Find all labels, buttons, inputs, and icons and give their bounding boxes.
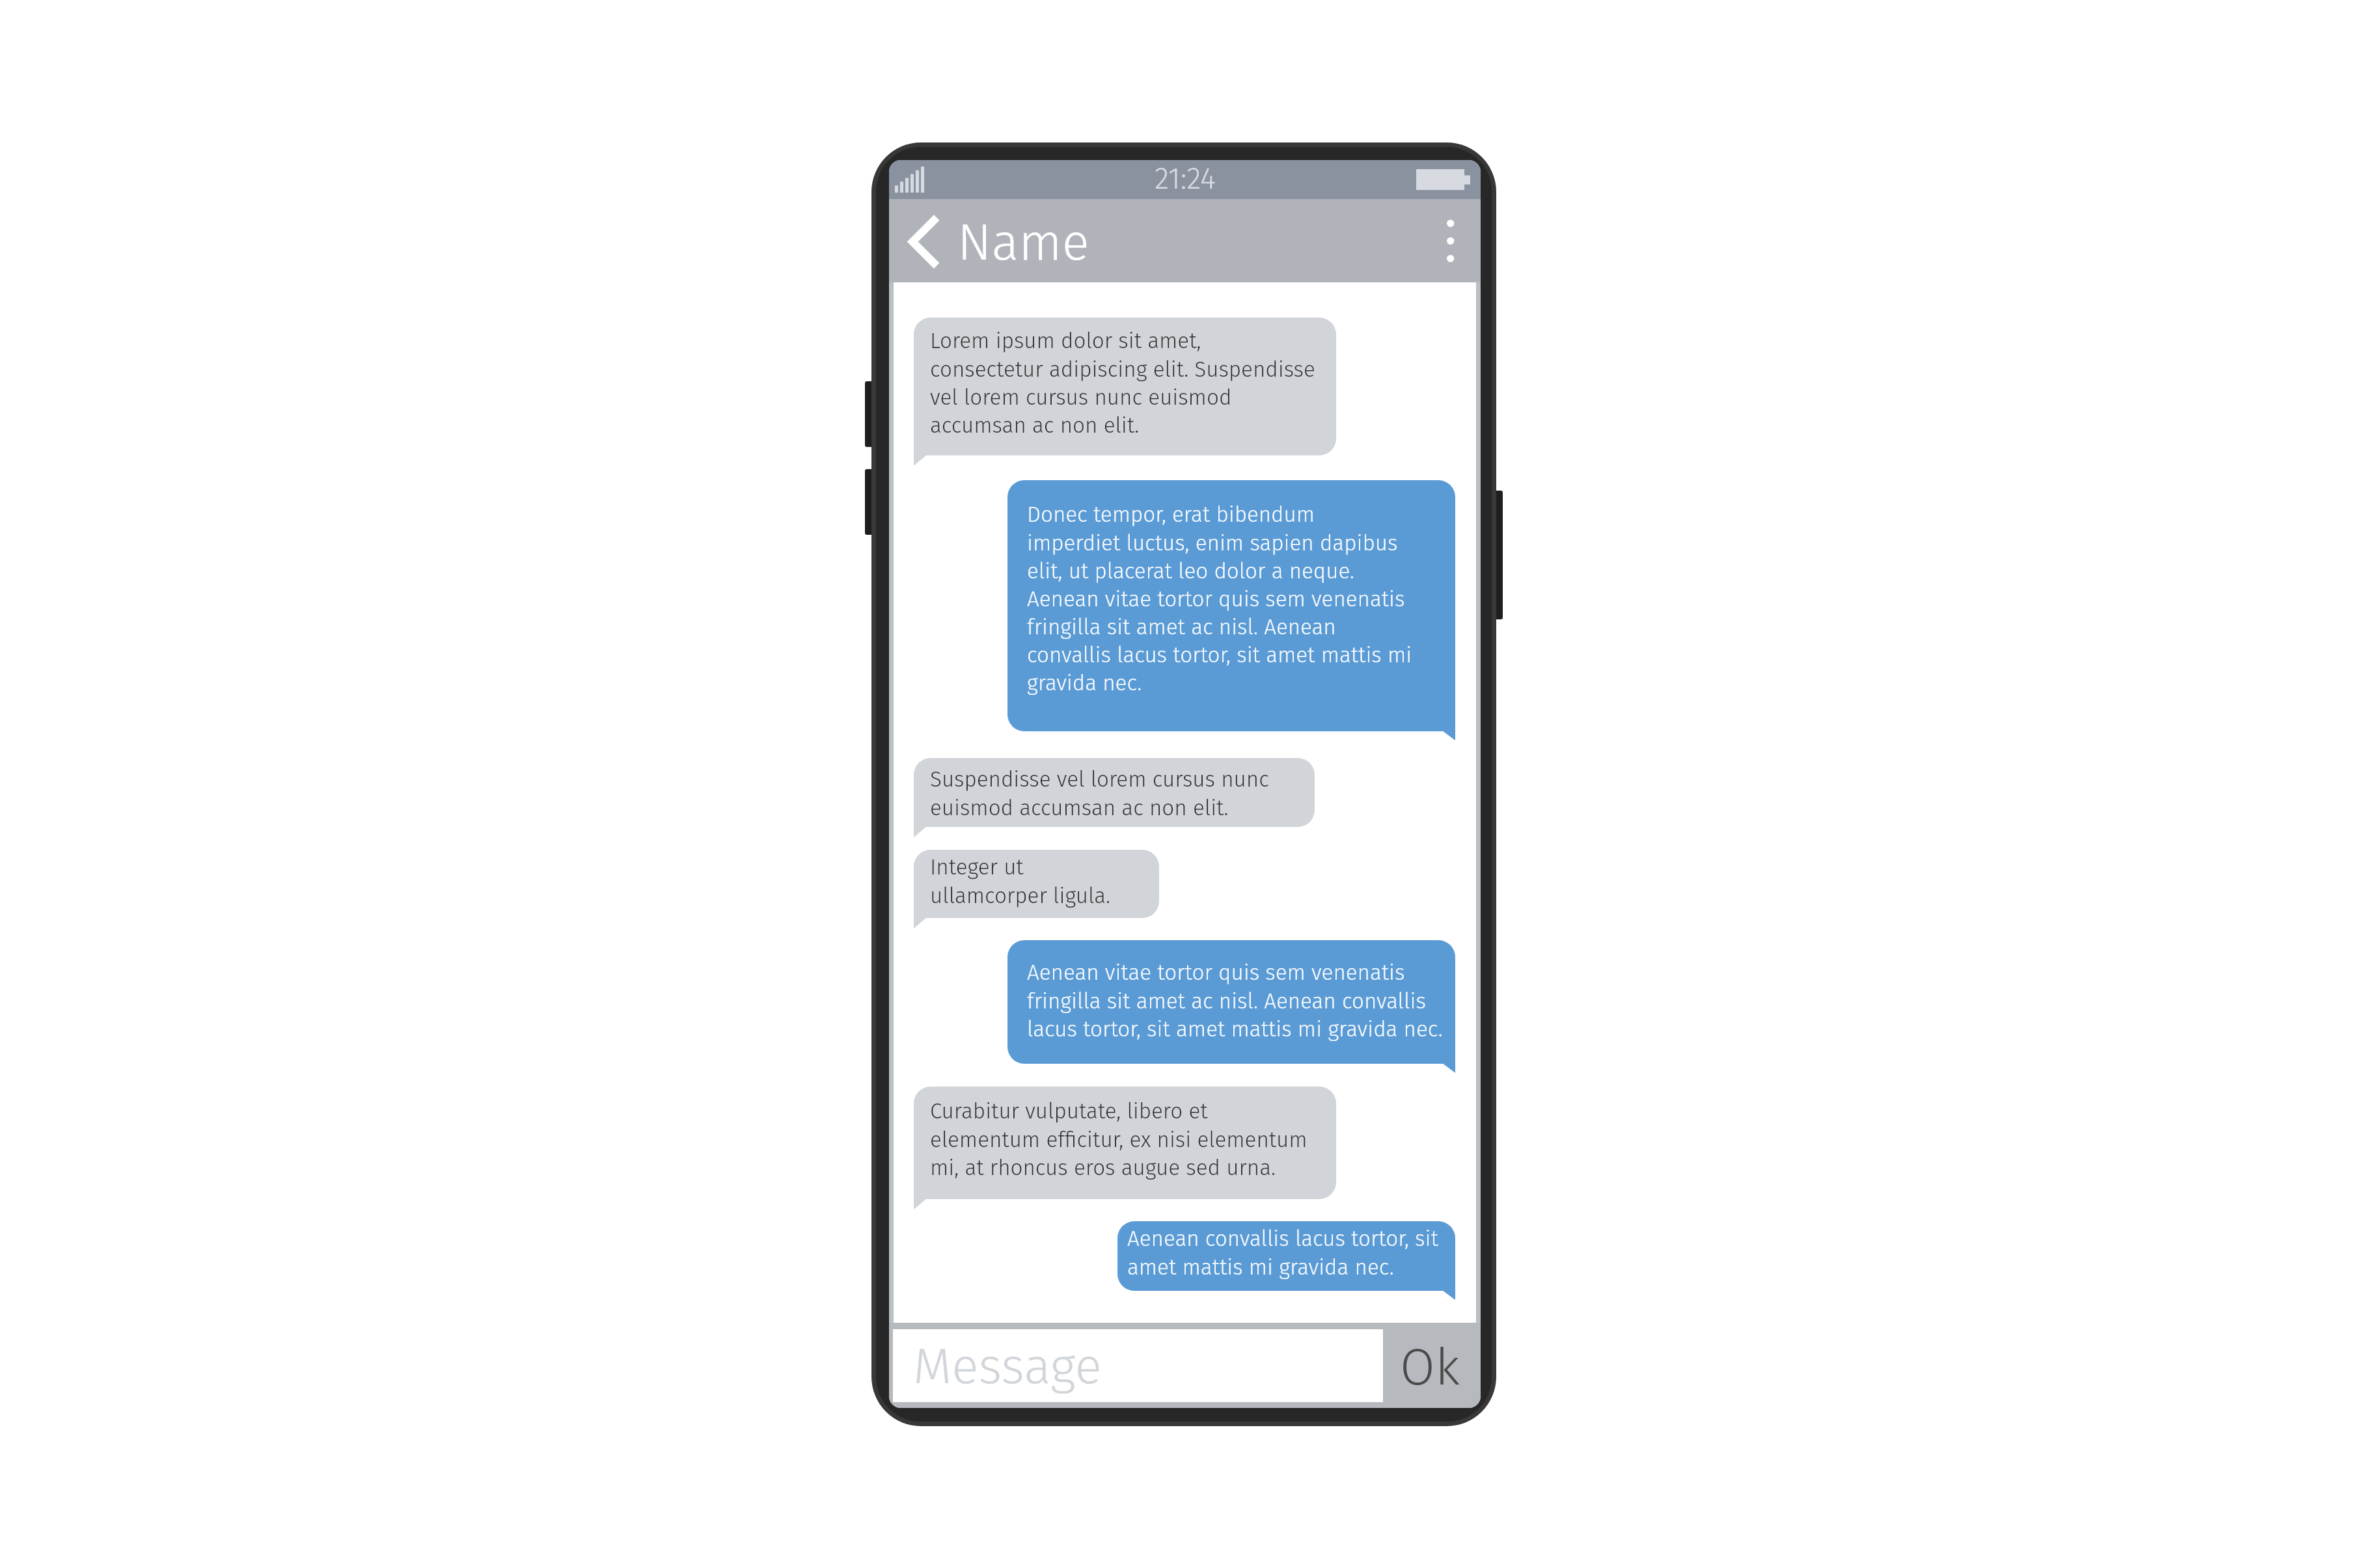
staticText: Lorem ipsum dolor sit amet, consectetur … (930, 328, 1315, 438)
staticText: Aenean convallis lacus tortor, sit amet … (1127, 1226, 1438, 1280)
staticText: 21:24 (1155, 161, 1216, 196)
staticText: Message (913, 1336, 1102, 1396)
button[interactable]: Integer ut ullamcorper ligula. (914, 850, 1159, 918)
button[interactable]: Donec tempor, erat bibendum imperdiet lu… (1007, 480, 1455, 731)
button[interactable]: Aenean vitae tortor quis sem venenatis f… (1007, 940, 1455, 1064)
button[interactable]: Suspendisse vel lorem cursus nunc euismo… (914, 758, 1315, 827)
staticText: Aenean vitae tortor quis sem venenatis f… (1027, 960, 1443, 1042)
button[interactable]: Ok (1381, 1323, 1479, 1408)
staticText: Curabitur vulputate, libero et elementum… (930, 1098, 1308, 1180)
staticText: Suspendisse vel lorem cursus nunc euismo… (930, 766, 1269, 820)
staticText: Name (957, 212, 1089, 273)
staticText: Ok (1400, 1337, 1460, 1398)
staticText: Integer ut ullamcorper ligula. (930, 854, 1110, 908)
button[interactable]: Lorem ipsum dolor sit amet, consectetur … (914, 318, 1336, 455)
staticText: Donec tempor, erat bibendum imperdiet lu… (1027, 502, 1412, 696)
button[interactable]: Message (893, 1329, 1383, 1402)
button[interactable]: More options (1434, 208, 1468, 274)
button[interactable]: Back (896, 204, 955, 277)
button[interactable]: Curabitur vulputate, libero et elementum… (914, 1087, 1336, 1199)
button[interactable]: Aenean convallis lacus tortor, sit amet … (1117, 1221, 1455, 1291)
